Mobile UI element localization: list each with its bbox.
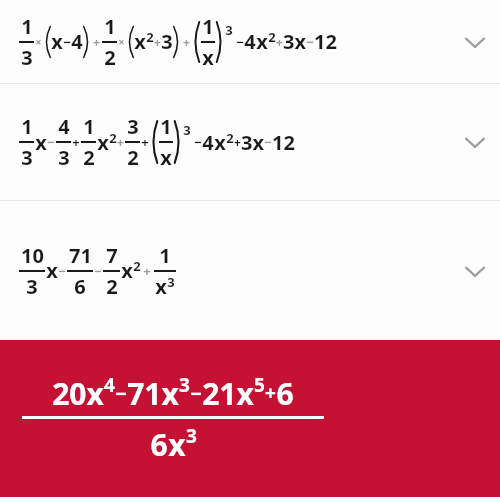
staticText: 20x (52, 373, 104, 414)
staticText: − (264, 133, 272, 151)
staticText: 3 (161, 28, 173, 55)
staticText: 2 (226, 129, 234, 147)
staticText: + (154, 34, 161, 50)
staticText: 12 (272, 129, 295, 156)
staticText: x (121, 257, 133, 284)
button[interactable]: 1 (0, 0, 500, 83)
staticText: 6 (150, 424, 168, 465)
staticText: 3 (179, 372, 190, 398)
staticText: 2 (106, 273, 118, 300)
staticText: 2 (268, 28, 276, 46)
staticText: x (155, 273, 167, 300)
staticText: 1 (202, 13, 214, 40)
staticText: + (265, 380, 276, 406)
button[interactable]: 10 (0, 201, 500, 340)
staticText: × (118, 34, 125, 49)
staticText: − (190, 380, 202, 407)
staticText: − (63, 33, 71, 51)
staticText: 71x (127, 373, 179, 414)
staticText: 3 (186, 423, 197, 449)
staticText: 5 (254, 372, 265, 398)
staticText: 2 (133, 257, 141, 275)
staticText: 3 (26, 273, 38, 300)
staticText: 3x (283, 28, 306, 55)
staticText: x (97, 129, 109, 156)
staticText: 4 (58, 113, 70, 140)
staticText: 1 (104, 13, 116, 40)
staticText: − (306, 33, 314, 51)
staticText: − (58, 262, 66, 280)
button[interactable]: Expand step (453, 120, 497, 164)
staticText: 1 (83, 113, 95, 140)
staticText: 4 (202, 129, 214, 156)
staticText: 21x (202, 373, 254, 414)
button[interactable]: Expand step (453, 249, 497, 293)
staticText: + (276, 34, 283, 50)
staticText: 4 (244, 28, 256, 55)
staticText: x (214, 129, 226, 156)
staticText: 10 (21, 242, 44, 269)
staticText: 1 (160, 113, 172, 140)
staticText: x (202, 44, 214, 71)
staticText: 1 (21, 13, 33, 40)
staticText: x (256, 28, 268, 55)
staticText: 3 (225, 21, 233, 39)
staticText: 6 (74, 273, 86, 300)
staticText: x (46, 257, 58, 284)
staticText: + (234, 134, 241, 150)
staticText: 3 (183, 121, 191, 139)
staticText: − (94, 262, 102, 280)
staticText: − (194, 133, 202, 151)
staticText: 3 (58, 144, 70, 171)
staticText: + (117, 134, 124, 150)
staticText: 2 (83, 144, 95, 171)
staticText: 3x (241, 129, 264, 156)
staticText: x (51, 28, 63, 55)
staticText: − (47, 133, 55, 151)
staticText: x (134, 28, 146, 55)
staticText: 2 (146, 28, 154, 46)
staticText: 2 (104, 44, 116, 71)
staticText: − (115, 380, 127, 407)
staticText: + (72, 133, 80, 151)
staticText: 3 (21, 144, 33, 171)
staticText: − (236, 33, 244, 51)
button[interactable]: 1 (0, 84, 500, 200)
staticText: 4 (104, 372, 115, 398)
staticText: 3 (127, 113, 139, 140)
staticText: + (183, 34, 190, 50)
staticText: x (35, 129, 47, 156)
staticText: 7 (106, 242, 118, 269)
staticText: + (143, 262, 151, 280)
staticText: 1 (159, 242, 171, 269)
staticText: 1 (21, 113, 33, 140)
staticText: 2 (127, 144, 139, 171)
staticText: 3 (167, 273, 175, 291)
staticText: 2 (109, 129, 117, 147)
staticText: 71 (69, 242, 92, 269)
staticText: × (35, 34, 42, 49)
button[interactable]: 20x (0, 340, 500, 497)
staticText: 12 (314, 28, 337, 55)
staticText: x (168, 424, 186, 465)
staticText: + (141, 133, 149, 151)
staticText: 4 (71, 28, 83, 55)
staticText: 3 (21, 44, 33, 71)
staticText: 6 (276, 373, 294, 414)
staticText: + (93, 34, 100, 50)
button[interactable]: Expand step (453, 20, 497, 64)
staticText: x (160, 144, 172, 171)
